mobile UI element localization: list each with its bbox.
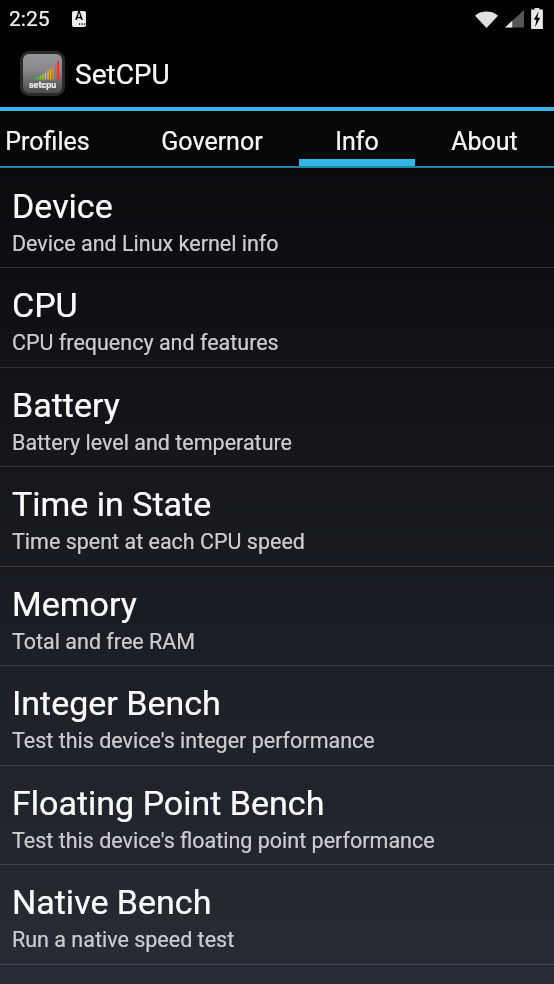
button[interactable]: Memory [0, 567, 554, 666]
other: Battery charging [530, 8, 544, 29]
button[interactable]: About [415, 111, 553, 168]
staticText: Test this device's floating point perfor… [12, 828, 435, 853]
staticText: Floating Point Bench [12, 783, 325, 823]
staticText: Profiles [5, 127, 90, 156]
other: Wi-Fi signal [475, 10, 498, 28]
button[interactable]: Time in State [0, 467, 554, 566]
button[interactable]: setcpu [0, 38, 170, 111]
staticText: Time in State [12, 484, 212, 524]
staticText: setcpu [29, 80, 57, 91]
staticText: SetCPU [75, 58, 170, 91]
staticText: Battery level and temperature [12, 430, 292, 455]
staticText: 2:25 [9, 7, 50, 32]
staticText: Device and Linux kernel info [12, 231, 279, 256]
staticText: CPU [12, 285, 78, 325]
staticText: Time spent at each CPU speed [12, 529, 305, 554]
button[interactable]: Profiles [0, 111, 125, 168]
staticText: Integer Bench [12, 683, 221, 723]
staticText: Test this device's integer performance [12, 728, 375, 753]
staticText: Device [12, 186, 113, 226]
button[interactable]: Integer Bench [0, 666, 554, 765]
staticText: Info [335, 127, 379, 156]
staticText: A [75, 11, 84, 23]
staticText: Total and free RAM [12, 629, 196, 654]
staticText: Governor [161, 127, 263, 156]
staticText: Run a native speed test [12, 927, 235, 952]
staticText: Memory [12, 584, 137, 624]
staticText: Native Bench [12, 882, 212, 922]
button[interactable]: Floating Point Bench [0, 766, 554, 865]
button[interactable]: CPU [0, 268, 554, 367]
button[interactable]: Governor [125, 111, 299, 168]
staticText: Battery [12, 385, 120, 425]
other: Mobile signal strength [505, 9, 524, 28]
staticText: CPU frequency and features [12, 330, 279, 355]
button[interactable]: Native Bench [0, 865, 554, 964]
button[interactable]: Battery [0, 368, 554, 467]
staticText: About [451, 127, 518, 156]
button[interactable]: Device [0, 169, 554, 268]
button[interactable]: Info [299, 111, 415, 168]
